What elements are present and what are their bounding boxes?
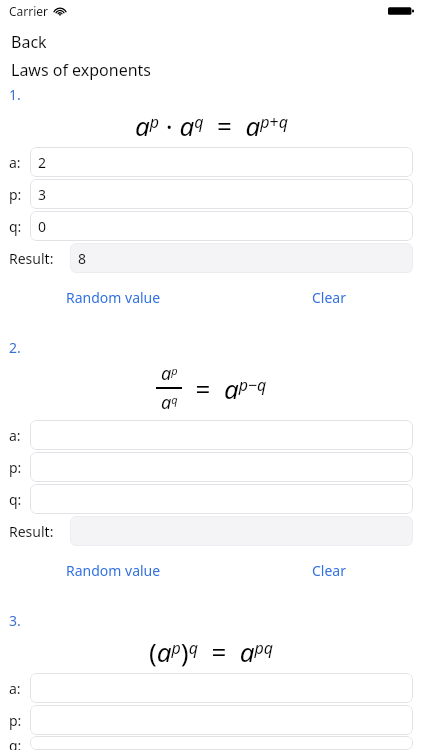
staticText: = ap−q: [182, 371, 267, 406]
staticText: Result:: [9, 249, 54, 268]
staticText: 3: [38, 185, 47, 204]
button[interactable]: Random value: [62, 285, 165, 310]
staticText: q:: [9, 217, 22, 236]
button[interactable]: 2: [30, 147, 413, 177]
staticText: 2: [38, 153, 47, 172]
staticText: ap: [161, 361, 178, 386]
staticText: q:: [9, 490, 22, 509]
button[interactable]: Random value: [62, 558, 165, 583]
staticText: (ap)q = apq: [149, 634, 274, 669]
staticText: a:: [9, 153, 21, 172]
staticText: p:: [9, 458, 22, 477]
button[interactable]: [30, 705, 413, 735]
button[interactable]: 3: [30, 179, 413, 209]
button[interactable]: Clear: [308, 285, 350, 310]
staticText: q:: [9, 736, 22, 750]
staticText: 1.: [9, 85, 21, 104]
staticText: p:: [9, 185, 22, 204]
button[interactable]: [30, 484, 413, 514]
button[interactable]: Clear: [308, 558, 350, 583]
staticText: Carrier: [9, 3, 49, 19]
staticText: p:: [9, 711, 22, 730]
staticText: Random value: [66, 288, 161, 307]
staticText: ap · aq = ap+q: [135, 108, 288, 143]
button[interactable]: [30, 452, 413, 482]
staticText: Random value: [66, 561, 161, 580]
button[interactable]: 0: [30, 211, 413, 241]
staticText: Result:: [9, 522, 54, 541]
staticText: 8: [78, 249, 87, 268]
staticText: Back: [11, 31, 47, 53]
staticText: aq: [161, 390, 178, 415]
staticText: Clear: [312, 561, 346, 580]
staticText: 3.: [9, 611, 21, 630]
button[interactable]: [30, 736, 413, 750]
button[interactable]: [30, 420, 413, 450]
staticText: Laws of exponents: [11, 59, 152, 81]
button[interactable]: [30, 673, 413, 703]
staticText: 0: [38, 217, 47, 236]
staticText: 2.: [9, 338, 21, 357]
staticText: a:: [9, 426, 21, 445]
button[interactable]: Back: [9, 30, 49, 54]
staticText: a:: [9, 679, 21, 698]
staticText: Clear: [312, 288, 346, 307]
